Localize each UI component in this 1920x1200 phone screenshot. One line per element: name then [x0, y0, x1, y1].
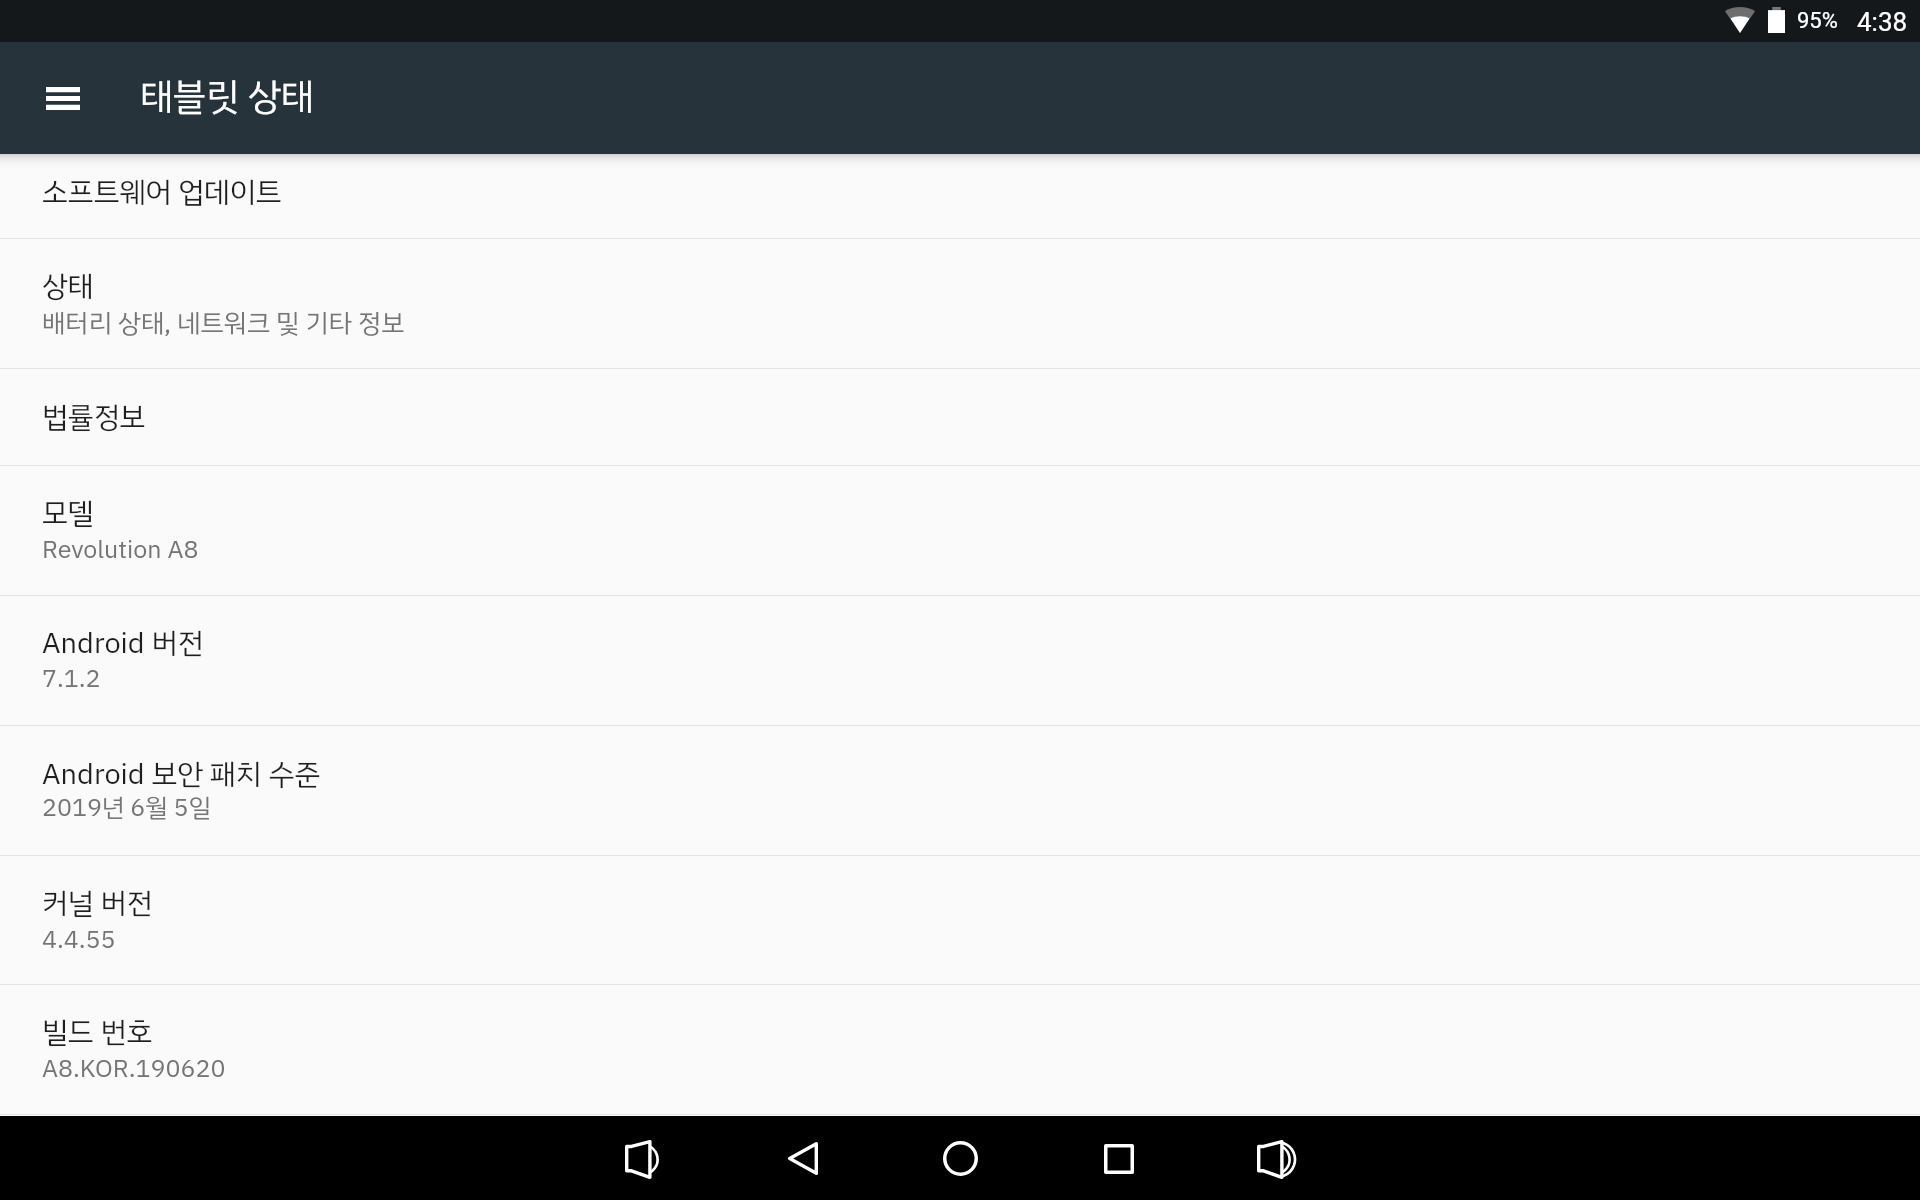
button[interactable]: Home — [918, 1116, 1002, 1200]
button[interactable]: Volume up — [1235, 1116, 1319, 1200]
staticText: 빌드 번호 — [42, 1011, 153, 1055]
button[interactable]: 커널 버전 — [0, 856, 1920, 984]
staticText: 소프트웨어 업데이트 — [42, 171, 282, 215]
staticText: Android 버전 — [42, 622, 204, 666]
staticText: 태블릿 상태 — [140, 69, 314, 125]
button[interactable]: Back — [761, 1116, 845, 1200]
staticText: 95% — [1797, 8, 1838, 34]
button[interactable]: Android 버전 — [0, 596, 1920, 725]
button[interactable]: 소프트웨어 업데이트 — [0, 154, 1920, 238]
button[interactable]: Open navigation menu — [24, 54, 102, 142]
button[interactable]: Recent apps — [1076, 1116, 1160, 1200]
staticText: 법률정보 — [42, 396, 146, 440]
staticText: 상태 — [42, 265, 94, 309]
button[interactable]: 빌드 번호 — [0, 985, 1920, 1114]
staticText: 4:38 — [1857, 7, 1908, 37]
button[interactable]: 법률정보 — [0, 369, 1920, 465]
staticText: Android 보안 패치 수준 — [42, 753, 321, 797]
button[interactable]: 모델 — [0, 466, 1920, 595]
staticText: 7.1.2 — [42, 660, 101, 698]
staticText: 2019년 6월 5일 — [42, 789, 211, 827]
staticText: 4.4.55 — [42, 921, 116, 959]
staticText: 모델 — [42, 492, 94, 536]
staticText: A8.KOR.190620 — [42, 1050, 226, 1088]
staticText: 커널 버전 — [42, 882, 153, 926]
button[interactable]: Android 보안 패치 수준 — [0, 726, 1920, 855]
staticText: 배터리 상태, 네트워크 및 기타 정보 — [42, 304, 405, 343]
button[interactable]: Volume down — [600, 1116, 684, 1200]
staticText: Revolution A8 — [42, 531, 199, 569]
button[interactable]: 상태 — [0, 239, 1920, 368]
